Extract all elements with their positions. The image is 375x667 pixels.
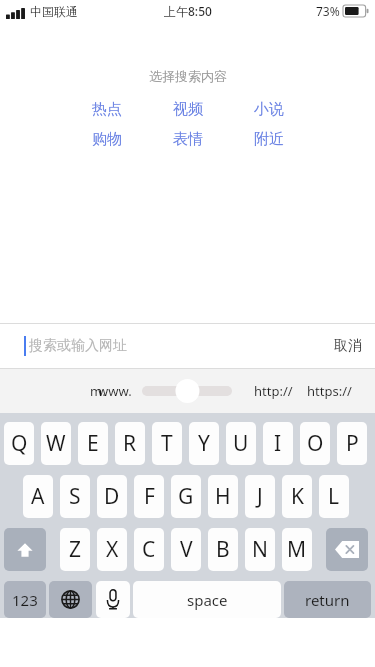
staticText: 表情 (173, 130, 203, 149)
staticText: www. (98, 382, 132, 400)
button[interactable]: T (152, 422, 182, 465)
staticText: Z (69, 535, 82, 564)
staticText: S (69, 482, 81, 511)
button[interactable]: m. (78, 376, 118, 406)
staticText: A (31, 482, 45, 511)
staticText: N (252, 535, 268, 564)
button[interactable]: A (23, 475, 53, 518)
button[interactable]: http:// (249, 376, 297, 406)
button[interactable]: R (115, 422, 145, 465)
button[interactable]: 取消 (334, 337, 362, 355)
button[interactable]: 123 (4, 581, 46, 618)
button[interactable]: N (245, 528, 275, 571)
staticText: O (307, 429, 324, 458)
staticText: I (274, 429, 282, 458)
button[interactable]: M (282, 528, 312, 571)
button[interactable]: L (319, 475, 349, 518)
button[interactable]: 附近 (239, 129, 299, 150)
button[interactable]: Change keyboard language (49, 581, 92, 618)
staticText: 上午8:50 (164, 3, 212, 19)
staticText: X (106, 535, 119, 564)
button[interactable]: K (282, 475, 312, 518)
staticText: T (161, 429, 173, 458)
button[interactable]: Q (4, 422, 34, 465)
button[interactable]: H (208, 475, 238, 518)
staticText: W (46, 429, 66, 458)
staticText: 视频 (173, 100, 203, 119)
button[interactable]: F (134, 475, 164, 518)
staticText: U (233, 429, 249, 458)
staticText: D (104, 482, 120, 511)
staticText: C (142, 535, 156, 564)
button[interactable]: Voice input (96, 581, 130, 618)
staticText: 小说 (254, 100, 284, 119)
staticText: 热点 (92, 100, 122, 119)
staticText: 123 (12, 590, 38, 610)
button[interactable]: D (97, 475, 127, 518)
button[interactable]: 热点 (77, 99, 137, 120)
staticText: L (328, 482, 340, 511)
staticText: Q (11, 429, 28, 458)
button[interactable]: return (284, 581, 371, 618)
staticText: R (123, 429, 137, 458)
button[interactable]: J (245, 475, 275, 518)
button[interactable]: 视频 (158, 99, 218, 120)
button[interactable]: V (171, 528, 201, 571)
button[interactable]: Z (60, 528, 90, 571)
staticText: V (180, 535, 193, 564)
button[interactable]: Y (189, 422, 219, 465)
staticText: Y (198, 429, 210, 458)
staticText: space (187, 590, 228, 610)
button[interactable]: B (208, 528, 238, 571)
button[interactable]: Delete (326, 528, 368, 571)
staticText: H (215, 482, 231, 511)
staticText: B (216, 535, 230, 564)
button[interactable]: S (60, 475, 90, 518)
button[interactable]: Shift (4, 528, 46, 571)
button[interactable]: 小说 (239, 99, 299, 120)
button[interactable]: G (171, 475, 201, 518)
staticText: G (178, 482, 194, 511)
button[interactable]: X (97, 528, 127, 571)
staticText: 73% (316, 3, 340, 19)
button[interactable]: https:// (303, 376, 355, 406)
staticText: http:// (254, 382, 293, 400)
button[interactable]: U (226, 422, 256, 465)
staticText: 选择搜索内容 (149, 68, 227, 84)
button[interactable]: O (300, 422, 330, 465)
staticText: m. (90, 382, 106, 400)
staticText: J (257, 482, 263, 511)
staticText: F (144, 482, 155, 511)
button[interactable]: I (263, 422, 293, 465)
staticText: E (87, 429, 99, 458)
staticText: return (305, 590, 350, 610)
staticText: K (291, 482, 304, 511)
staticText: M (287, 535, 307, 564)
button[interactable]: www. (92, 376, 138, 406)
button[interactable]: W (41, 422, 71, 465)
staticText: P (346, 429, 359, 458)
button[interactable]: space (133, 581, 281, 618)
staticText: https:// (307, 382, 352, 400)
button[interactable]: C (134, 528, 164, 571)
button[interactable]: P (337, 422, 367, 465)
button[interactable]: 购物 (77, 129, 137, 150)
button[interactable]: 搜索或输入网址 (29, 337, 326, 355)
staticText: 购物 (92, 130, 122, 149)
button[interactable] (142, 376, 232, 406)
button[interactable]: E (78, 422, 108, 465)
button[interactable]: 表情 (158, 129, 218, 150)
staticText: 搜索或输入网址 (29, 337, 127, 355)
staticText: 中国联通 (30, 4, 78, 19)
staticText: 取消 (334, 337, 362, 355)
staticText: 附近 (254, 130, 284, 149)
